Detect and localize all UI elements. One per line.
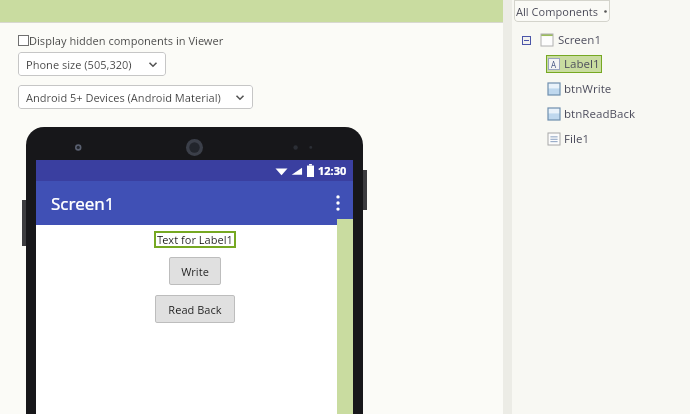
staticText: Screen1 xyxy=(51,192,115,215)
staticText: 12:30 xyxy=(318,163,347,178)
button[interactable]: Display hidden components in Viewer xyxy=(18,33,224,48)
staticText: Android 5+ Devices (Android Material) xyxy=(26,90,235,105)
button[interactable]: File1 xyxy=(548,131,589,147)
staticText: btnWrite xyxy=(564,81,612,97)
staticText: Write xyxy=(181,264,209,279)
button[interactable]: A xyxy=(546,55,602,73)
staticText: Text for Label1 xyxy=(157,232,233,247)
button[interactable]: Text for Label1 xyxy=(154,231,236,248)
staticText: btnReadBack xyxy=(564,106,636,122)
staticText: File1 xyxy=(564,131,589,147)
button[interactable]: More options xyxy=(323,188,353,218)
staticText: Phone size (505,320) xyxy=(26,57,148,72)
button[interactable]: Screen1 xyxy=(522,32,602,48)
staticText: Display hidden components in Viewer xyxy=(29,33,224,48)
button[interactable]: btnReadBack xyxy=(548,106,636,122)
button[interactable]: Phone size (505,320) xyxy=(18,52,166,76)
button[interactable]: btnWrite xyxy=(548,81,612,97)
button[interactable]: All Components xyxy=(514,0,610,22)
staticText: Read Back xyxy=(168,302,222,317)
staticText: Screen1 xyxy=(558,32,602,48)
staticText: Label1 xyxy=(564,56,600,72)
button[interactable]: Write xyxy=(169,257,221,285)
staticText: All Components xyxy=(516,4,598,19)
button[interactable]: Android 5+ Devices (Android Material) xyxy=(18,85,253,109)
staticText: A xyxy=(551,59,557,70)
button[interactable]: Read Back xyxy=(155,295,235,323)
